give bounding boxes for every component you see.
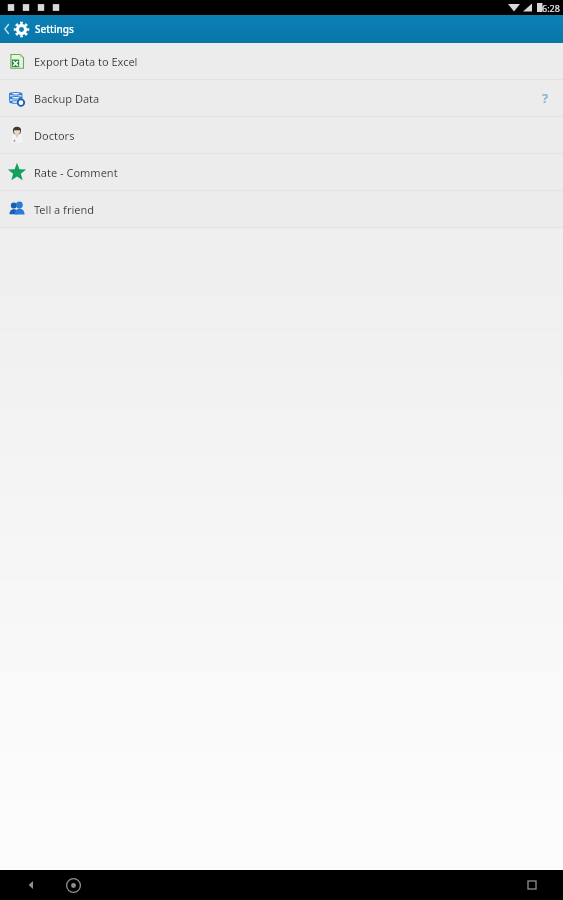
staticText: Backup Data <box>34 91 100 106</box>
staticText: Tell a friend <box>34 202 95 217</box>
button[interactable]: Tell a friend <box>0 191 563 227</box>
button[interactable]: ? <box>538 89 553 107</box>
staticText: Rate - Comment <box>34 165 118 180</box>
button[interactable]: Home <box>60 872 86 898</box>
staticText: Settings <box>35 22 74 36</box>
button[interactable]: Recent apps <box>519 872 545 898</box>
staticText: Doctors <box>34 128 75 143</box>
button[interactable]: Back <box>2 15 12 43</box>
staticText: Export Data to Excel <box>34 54 138 69</box>
staticText: 6:28 <box>542 2 560 14</box>
button[interactable]: Rate - Comment <box>0 154 563 190</box>
button[interactable]: Backup Data <box>0 80 563 116</box>
button[interactable]: Back <box>18 872 44 898</box>
button[interactable]: Doctors <box>0 117 563 153</box>
button[interactable]: Export Data to Excel <box>0 43 563 79</box>
